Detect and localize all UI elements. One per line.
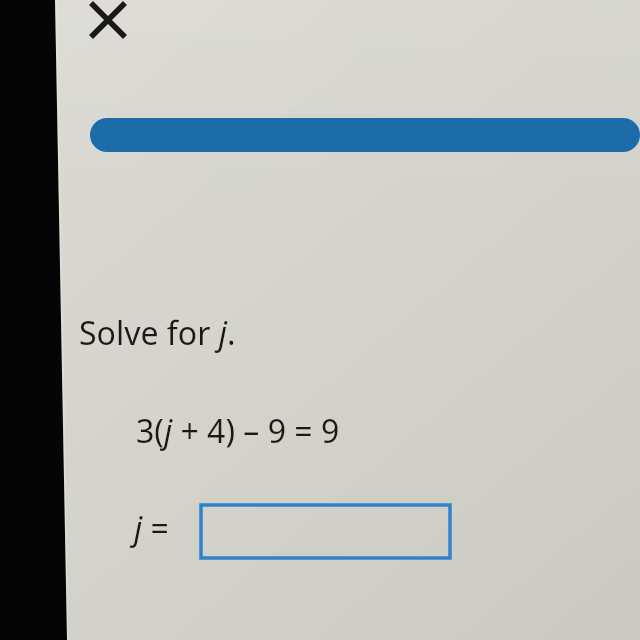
button[interactable]: Close <box>86 0 130 42</box>
staticText: 3(j + 4) – 9 = 9 <box>136 409 340 453</box>
button[interactable]: Answer input field <box>201 505 450 558</box>
staticText: j = <box>134 506 169 550</box>
staticText: Solve for j. <box>79 311 236 355</box>
